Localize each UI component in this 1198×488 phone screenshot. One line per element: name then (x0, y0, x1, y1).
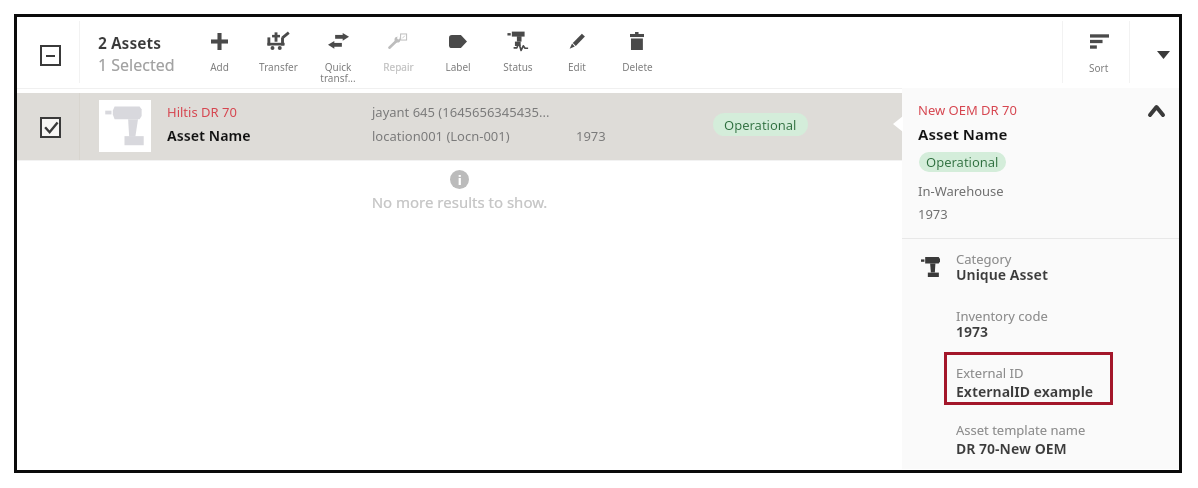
staticText: Transfer (259, 60, 298, 74)
staticText: 2 Assets (98, 32, 161, 53)
staticText: 1973 (576, 127, 606, 145)
button[interactable]: Transfer (248, 29, 308, 87)
staticText: No more results to show. (353, 192, 566, 212)
button[interactable]: Repair (368, 29, 428, 87)
staticText: 1973 (918, 205, 948, 223)
staticText: jayant 645 (1645656345435... (372, 103, 550, 121)
staticText: Operational (926, 153, 999, 171)
button[interactable]: Sort (1081, 23, 1117, 83)
button[interactable]: Selected, Asset Name (34, 111, 66, 143)
staticText: Category (956, 250, 1012, 268)
staticText: DR 70-New OEM (956, 439, 1067, 458)
button[interactable]: Add (189, 29, 249, 87)
button[interactable]: Collapse details (1142, 97, 1170, 125)
staticText: i (458, 172, 462, 188)
staticText: ExternalID example (956, 382, 1094, 401)
staticText: Hiltis DR 70 (167, 103, 237, 121)
staticText: Edit (568, 60, 586, 74)
staticText: location001 (Locn-001) (372, 127, 510, 145)
button[interactable]: Label (428, 29, 488, 87)
staticText: Unique Asset (956, 265, 1048, 284)
staticText: Quick transf... (320, 60, 356, 85)
button[interactable]: Select all (34, 39, 66, 71)
staticText: Asset Name (167, 126, 251, 145)
staticText: In-Warehouse (918, 182, 1004, 200)
staticText: New OEM DR 70 (918, 101, 1017, 119)
staticText: Repair (383, 60, 414, 74)
button[interactable]: Quick transf... (308, 29, 368, 87)
staticText: Sort (1089, 61, 1109, 75)
button[interactable]: Status (488, 29, 548, 87)
staticText: 1 Selected (98, 54, 175, 76)
staticText: Inventory code (956, 307, 1048, 325)
button[interactable]: Delete (607, 29, 667, 87)
staticText: Status (503, 60, 533, 74)
staticText: Asset Name (918, 124, 1008, 144)
staticText: External ID (956, 364, 1024, 382)
button[interactable]: More options (1147, 39, 1179, 71)
button[interactable]: Edit (547, 29, 607, 87)
staticText: 1973 (956, 322, 989, 341)
staticText: Label (445, 60, 471, 74)
button[interactable]: Selected, Asset Name (17, 93, 902, 160)
staticText: Asset template name (956, 421, 1086, 439)
staticText: Operational (724, 116, 797, 134)
staticText: Add (210, 60, 229, 74)
staticText: Delete (622, 60, 653, 74)
